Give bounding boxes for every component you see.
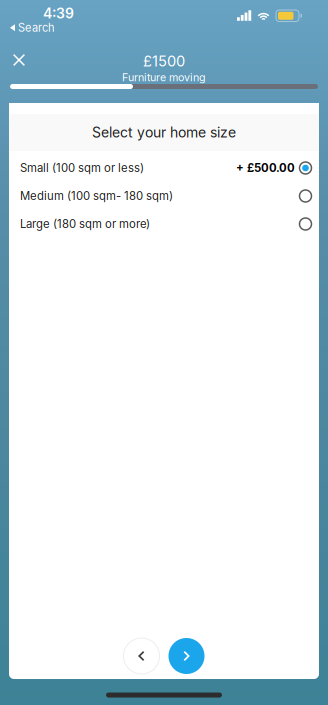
button[interactable]: Close (3, 44, 35, 76)
staticText: Large (180 sqm or more) (20, 217, 150, 231)
button[interactable]: Next step (168, 638, 204, 674)
button[interactable]: Medium (100 sqm- 180 sqm) (9, 182, 319, 210)
button[interactable]: Back to Search (10, 21, 55, 34)
button[interactable]: Previous step (123, 638, 159, 674)
staticText: Medium (100 sqm- 180 sqm) (20, 189, 173, 203)
button[interactable]: Small (100 sqm or less) (9, 154, 319, 182)
staticText: 4:39 (43, 5, 74, 22)
staticText: Search (18, 21, 55, 34)
staticText: £1500 (143, 52, 185, 70)
staticText: + £500.00 (236, 161, 295, 175)
staticText: Select your home size (92, 124, 236, 141)
staticText: Furniture moving (122, 71, 206, 84)
staticText: Small (100 sqm or less) (20, 161, 144, 175)
button[interactable]: Large (180 sqm or more) (9, 210, 319, 238)
